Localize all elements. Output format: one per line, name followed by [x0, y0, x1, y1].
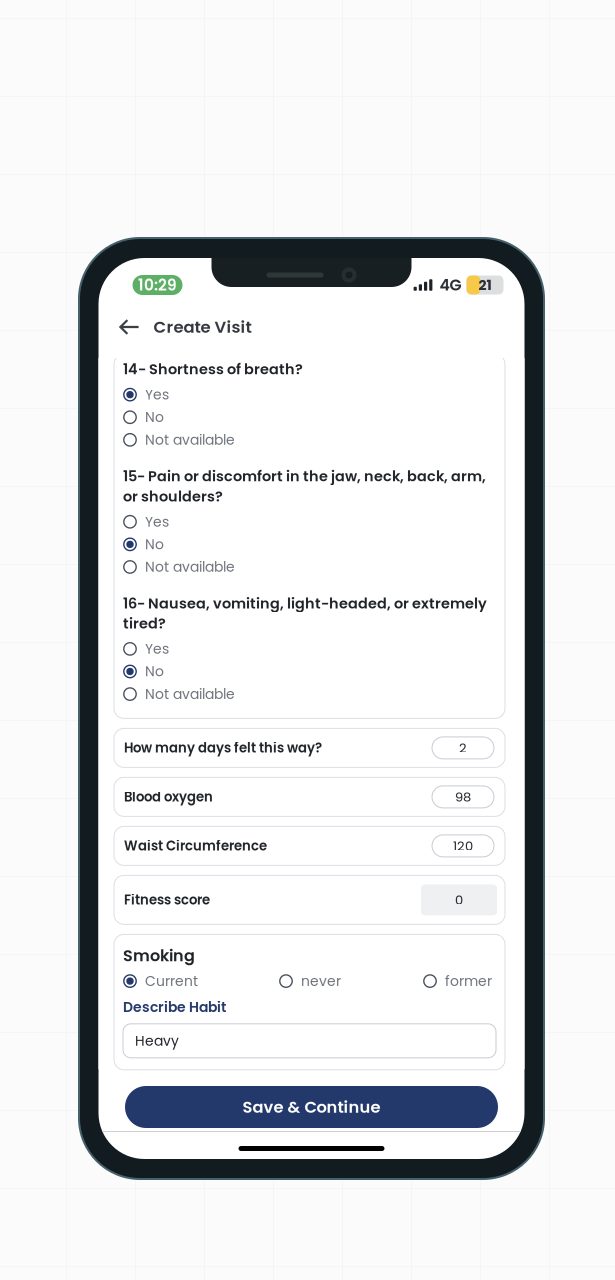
staticText: 2 [459, 739, 467, 757]
staticText: Not available [145, 557, 235, 577]
staticText: Waist Circumference [124, 837, 267, 855]
button[interactable]: Waist Circumference [114, 826, 505, 865]
staticText: 21 [478, 275, 491, 295]
button[interactable]: Not available [123, 429, 496, 451]
staticText: 0 [455, 891, 463, 909]
button[interactable]: former [423, 970, 500, 992]
staticText: Save & Continue [242, 1096, 380, 1118]
button[interactable]: Current [123, 970, 279, 992]
button[interactable]: Blood oxygen [114, 777, 505, 816]
staticText: 15- Pain or discomfort in the jaw, neck,… [123, 466, 486, 506]
button[interactable]: No [123, 660, 496, 683]
staticText: Yes [145, 385, 169, 404]
staticText: 120 [453, 837, 473, 855]
staticText: 98 [455, 788, 471, 806]
button[interactable]: Yes [123, 638, 496, 660]
staticText: former [445, 971, 492, 991]
button[interactable]: How many days felt this way? [114, 728, 505, 767]
staticText: No [145, 662, 164, 681]
staticText: 4G [439, 274, 461, 296]
staticText: never [301, 971, 341, 991]
button[interactable]: Heavy [123, 1024, 496, 1058]
staticText: No [145, 535, 164, 554]
staticText: Create Visit [153, 315, 251, 338]
button[interactable]: No [123, 406, 496, 429]
staticText: Not available [145, 684, 235, 704]
staticText: Describe Habit [123, 997, 226, 1017]
staticText: Yes [145, 512, 169, 531]
button[interactable]: Fitness score [114, 875, 505, 924]
button[interactable]: No [123, 533, 496, 556]
staticText: Not available [145, 430, 235, 449]
button[interactable]: Not available [123, 683, 496, 705]
staticText: Smoking [123, 944, 195, 967]
staticText: 14- Shortness of breath? [123, 359, 303, 379]
staticText: 10:29 [138, 274, 177, 296]
button[interactable]: Back [111, 310, 147, 344]
staticText: Blood oxygen [124, 788, 213, 806]
button[interactable]: Yes [123, 510, 496, 533]
staticText: Fitness score [124, 891, 210, 909]
button[interactable]: Not available [123, 556, 496, 578]
staticText: No [145, 407, 164, 427]
staticText: How many days felt this way? [124, 739, 322, 757]
button[interactable]: Yes [123, 383, 496, 406]
button[interactable]: never [279, 970, 423, 992]
staticText: Current [145, 971, 198, 991]
staticText: 16- Nausea, vomiting, light-headed, or e… [123, 593, 487, 634]
staticText: Heavy [135, 1031, 179, 1050]
staticText: Yes [145, 639, 169, 659]
button[interactable]: Save & Continue [125, 1086, 498, 1128]
